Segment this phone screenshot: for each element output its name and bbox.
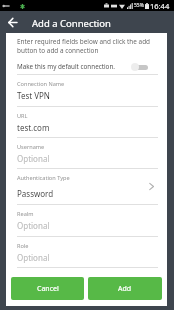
button[interactable]: Authentication Type xyxy=(6,169,167,204)
button[interactable]: Make this my default connection. xyxy=(6,59,167,74)
staticText: Optional xyxy=(17,252,50,263)
staticText: 16:44 xyxy=(150,1,170,11)
staticText: Cancel xyxy=(37,284,59,294)
button[interactable]: Cancel xyxy=(11,277,84,300)
staticText: 55% xyxy=(134,2,144,9)
staticText: Add a Connection xyxy=(32,17,111,30)
button[interactable]: Username xyxy=(6,138,167,168)
staticText: Authentication Type xyxy=(17,174,70,182)
button[interactable]: Connection Name xyxy=(6,75,167,106)
staticText: Realm xyxy=(17,210,34,218)
staticText: Connection Name xyxy=(17,80,65,88)
button[interactable]: Back xyxy=(1,11,23,33)
staticText: Optional xyxy=(17,153,50,164)
staticText: URL xyxy=(17,112,28,120)
staticText: Optional xyxy=(17,220,50,231)
staticText: Enter required fields below and click th… xyxy=(17,37,158,54)
button[interactable]: URL xyxy=(6,107,167,137)
staticText: test.com xyxy=(17,122,50,133)
button[interactable]: Role xyxy=(6,237,167,267)
button[interactable]: Add xyxy=(88,277,162,300)
staticText: Test VPN xyxy=(17,90,50,101)
staticText: Role xyxy=(17,242,29,250)
staticText: Password xyxy=(17,188,54,199)
staticText: Username xyxy=(17,143,45,151)
button[interactable]: Realm xyxy=(6,205,167,236)
staticText: Make this my default connection. xyxy=(17,62,115,71)
staticText: Add xyxy=(118,284,132,294)
